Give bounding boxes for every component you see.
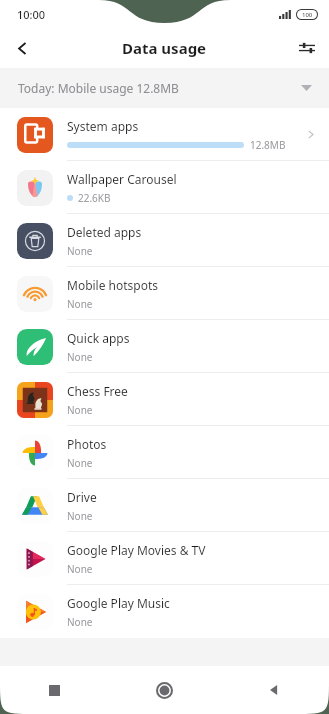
button[interactable]: Recent apps bbox=[0, 666, 109, 714]
staticText: 100 bbox=[302, 11, 313, 19]
button[interactable]: Sort options bbox=[285, 28, 329, 68]
staticText: Quick apps bbox=[67, 330, 130, 346]
staticText: None bbox=[67, 350, 93, 364]
staticText: Mobile hotspots bbox=[67, 277, 159, 293]
button[interactable]: Deleted apps bbox=[0, 214, 329, 267]
button[interactable]: Drive bbox=[0, 479, 329, 532]
staticText: None bbox=[67, 403, 93, 417]
button[interactable]: Back bbox=[219, 666, 329, 714]
staticText: Data usage bbox=[122, 38, 207, 58]
staticText: System apps bbox=[67, 118, 139, 134]
button[interactable]: Google Play Movies & TV bbox=[0, 532, 329, 585]
button[interactable]: Google Play Music bbox=[0, 585, 329, 638]
button[interactable]: Wallpaper Carousel bbox=[0, 161, 329, 214]
staticText: Google Play Music bbox=[67, 595, 170, 611]
button[interactable]: Mobile hotspots bbox=[0, 267, 329, 320]
staticText: Google Play Movies & TV bbox=[67, 542, 206, 558]
staticText: 22.6KB bbox=[78, 191, 111, 205]
staticText: None bbox=[67, 562, 93, 576]
button[interactable]: Photos bbox=[0, 426, 329, 479]
staticText: None bbox=[67, 456, 93, 470]
staticText: Drive bbox=[67, 489, 97, 505]
button[interactable]: Back bbox=[0, 28, 44, 68]
staticText: None bbox=[67, 297, 93, 311]
staticText: 10:00 bbox=[17, 7, 46, 22]
staticText: None bbox=[67, 244, 93, 258]
button[interactable]: System apps bbox=[0, 108, 329, 161]
button[interactable]: Chess Free bbox=[0, 373, 329, 426]
staticText: Wallpaper Carousel bbox=[67, 171, 177, 187]
staticText: None bbox=[67, 509, 93, 523]
staticText: Today: Mobile usage 12.8MB bbox=[18, 80, 179, 96]
staticText: None bbox=[67, 615, 93, 629]
button[interactable]: Home bbox=[109, 666, 219, 714]
staticText: Deleted apps bbox=[67, 224, 142, 240]
staticText: 12.8MB bbox=[250, 138, 286, 152]
staticText: Photos bbox=[67, 436, 107, 452]
button[interactable]: Today: Mobile usage 12.8MB bbox=[0, 68, 329, 108]
button[interactable]: Quick apps bbox=[0, 320, 329, 373]
staticText: Chess Free bbox=[67, 383, 128, 399]
